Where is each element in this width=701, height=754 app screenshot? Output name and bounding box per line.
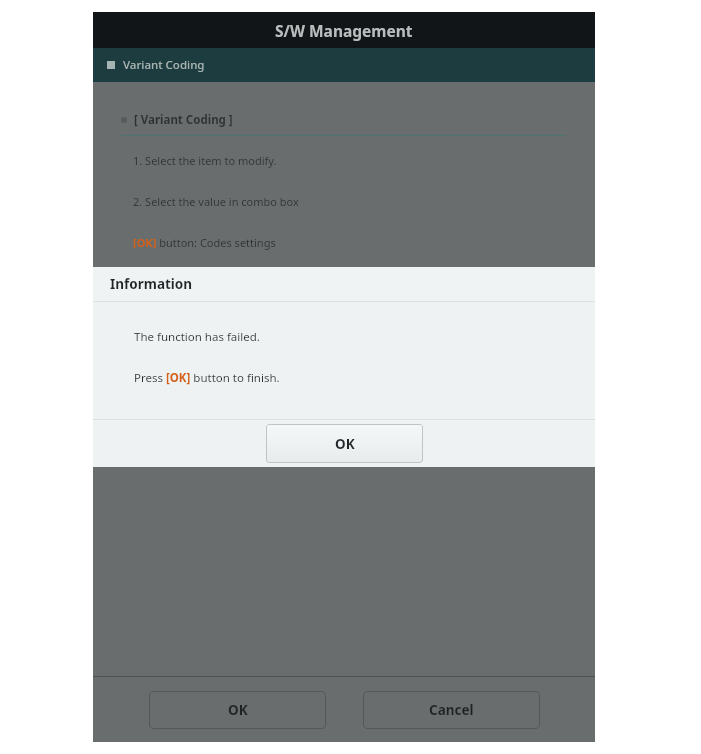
button[interactable]: OK <box>266 424 423 463</box>
button[interactable]: Variant Coding <box>93 48 595 82</box>
button[interactable]: Cancel <box>363 691 540 729</box>
staticText: S/W Management <box>275 20 413 41</box>
staticText: Information <box>110 275 193 293</box>
staticText: Variant Coding <box>123 57 205 73</box>
staticText: Press [OK] button to finish. <box>134 370 280 386</box>
staticText: [OK] button: Codes settings <box>133 235 276 250</box>
staticText: [ Variant Coding ] <box>134 112 233 128</box>
staticText: The function has failed. <box>134 329 260 345</box>
staticText: OK <box>335 435 355 453</box>
staticText: 2. Select the value in combo box <box>133 194 299 209</box>
staticText: OK <box>228 701 248 719</box>
staticText: 1. Select the item to modify. <box>133 153 277 168</box>
staticText: Cancel <box>429 701 474 719</box>
button[interactable]: OK <box>149 691 326 729</box>
